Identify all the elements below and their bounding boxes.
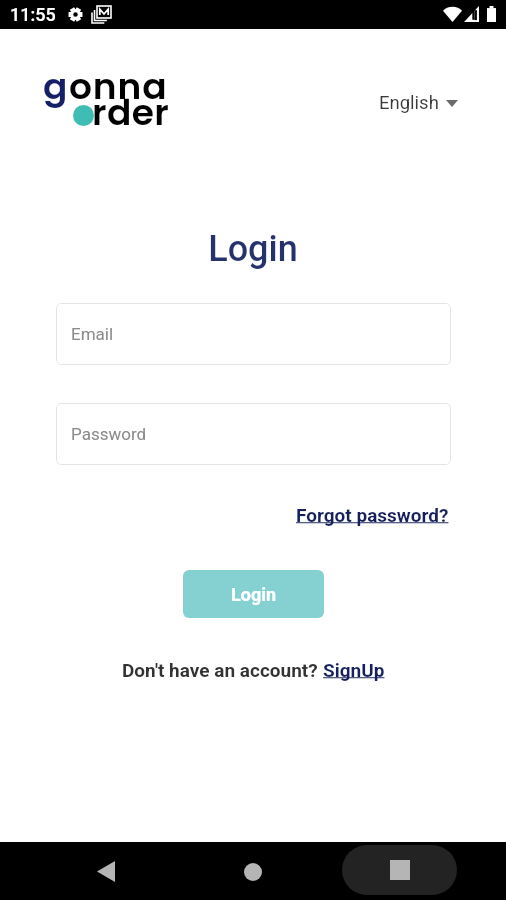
staticText: Login [231, 584, 277, 605]
button[interactable]: Forgot password? [294, 500, 451, 530]
button[interactable]: Password [56, 403, 451, 465]
staticText: Forgot password? [296, 504, 449, 526]
staticText: English [379, 92, 439, 114]
button[interactable]: Login [183, 570, 324, 618]
button[interactable]: Home [238, 857, 268, 887]
staticText: Login [0, 228, 506, 270]
staticText: 11:55 [10, 4, 56, 25]
button[interactable]: Email [56, 303, 451, 365]
button[interactable]: SignUp [323, 659, 385, 681]
button[interactable]: Select language, English [375, 86, 462, 120]
button[interactable]: Back [91, 856, 121, 886]
staticText: Password [71, 424, 147, 444]
staticText: onna [69, 61, 168, 111]
staticText: rder [92, 87, 170, 137]
staticText: g [43, 61, 69, 111]
button[interactable]: Recents [342, 845, 457, 895]
staticText: Don't have an account? [122, 659, 323, 681]
staticText: Email [71, 324, 114, 344]
